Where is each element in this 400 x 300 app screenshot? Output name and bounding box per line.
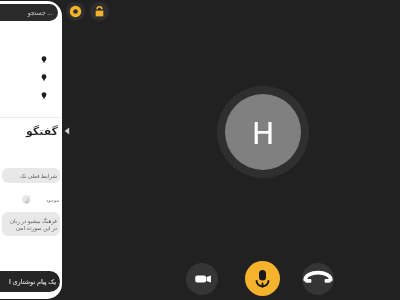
button[interactable]: یک پیام نوشتاری ا — [0, 271, 60, 292]
button[interactable]: Notifications — [66, 2, 85, 21]
button[interactable]: فرهنگ بپشیو در زبان — [2, 212, 60, 236]
staticText: یک پیام نوشتاری ا — [8, 277, 56, 286]
button[interactable]: Location marker — [40, 56, 48, 64]
button[interactable]: شرایط فعلی نک — [2, 168, 60, 183]
button[interactable]: جستجو ... — [0, 4, 58, 21]
staticText: H — [252, 112, 275, 153]
staticText: در این صورت امی — [15, 224, 57, 231]
button[interactable]: Mute microphone — [245, 261, 280, 296]
staticText: فرهنگ بپشیو در زبان — [9, 217, 57, 224]
button[interactable]: Turn off camera — [186, 263, 218, 295]
staticText: شرایط فعلی نک — [20, 172, 57, 179]
staticText: جستجو ... — [27, 9, 52, 17]
button[interactable]: Lock — [90, 2, 109, 21]
staticText: ل — [25, 197, 29, 203]
button[interactable]: Location marker — [40, 74, 48, 82]
button[interactable]: End call — [302, 263, 334, 295]
button[interactable]: Collapse panel — [62, 122, 72, 140]
button[interactable]: Location marker — [40, 92, 48, 100]
staticText: گفتگو — [25, 125, 58, 138]
staticText: موجود — [46, 197, 60, 203]
